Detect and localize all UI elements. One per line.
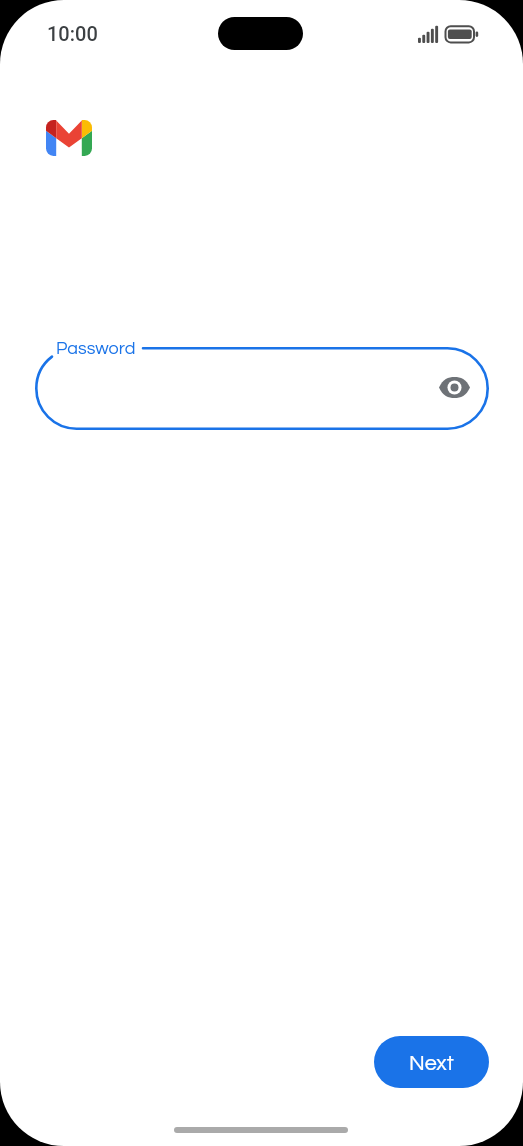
button[interactable]: Next [374,1036,489,1088]
button[interactable]: Password [35,347,489,430]
button[interactable]: Show password [434,367,474,407]
staticText: Next [409,1052,454,1074]
staticText: 10:00 [47,22,98,45]
staticText: Password [56,339,136,358]
